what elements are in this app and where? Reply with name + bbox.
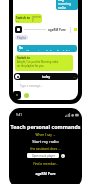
staticText: No: [19, 46, 23, 50]
button[interactable]: Switch to: [15, 55, 73, 71]
staticText: on the playlist for you.: [17, 64, 45, 68]
button[interactable]: No: [17, 45, 77, 52]
button[interactable]: Switch to: [15, 14, 42, 23]
staticText: morning: [32, 15, 41, 21]
staticText: today: [42, 75, 51, 79]
button[interactable]: Playlist: [15, 35, 28, 40]
staticText: Open music player: [32, 154, 55, 158]
staticText: When I say ...: [9, 133, 82, 137]
button[interactable]: Open music player: [27, 153, 59, 158]
staticText: •••: [73, 75, 76, 78]
staticText: Alright, I've put the Morning radio: [17, 60, 59, 64]
staticText: Switch to: [17, 56, 30, 60]
staticText: morning radio: [58, 2, 76, 9]
button[interactable]: today: [14, 73, 78, 80]
button[interactable]: Add: [61, 154, 65, 158]
staticText: Find a member...: [9, 162, 82, 166]
staticText: Teach personal commands: [9, 123, 82, 130]
staticText: the assistant does ...: [9, 147, 82, 151]
staticText: +: [62, 154, 64, 158]
staticText: Playlist: [17, 36, 26, 40]
staticText: I want the morning radio from the playli…: [19, 50, 70, 51]
staticText: agxRM Pure: [9, 171, 82, 176]
button[interactable]: Hey: [56, 0, 78, 10]
staticText: Type a message…: [20, 84, 43, 88]
staticText: Morning radio: [16, 21, 35, 22]
staticText: Start my radio: [9, 139, 82, 144]
staticText: Switch to: [16, 16, 30, 20]
staticText: 9:41: [16, 113, 22, 117]
button[interactable]: agxRM Pure: [15, 25, 78, 34]
staticText: Hey: [58, 0, 65, 2]
staticText: agxRM Pure: [48, 28, 66, 32]
